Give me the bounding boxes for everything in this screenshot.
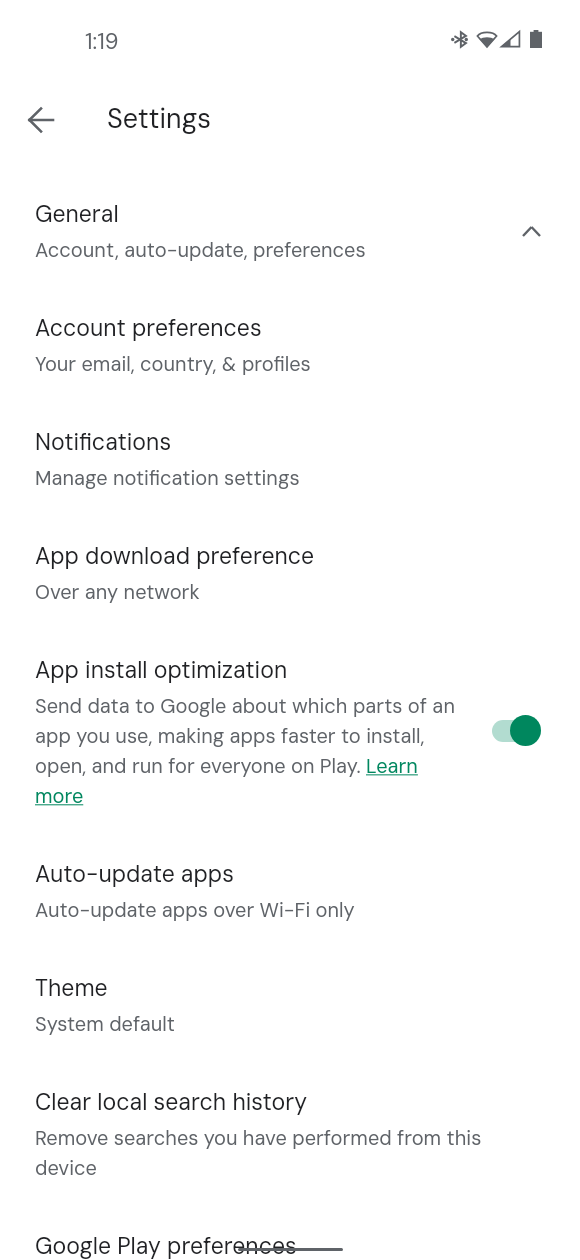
button[interactable]: Notifications [0,427,580,541]
button[interactable]: Clear local search history [0,1087,580,1231]
staticText: App download preference [35,541,315,571]
button[interactable]: Collapse General [507,207,555,255]
staticText: Notifications [35,427,172,457]
staticText: Settings [107,101,211,136]
button[interactable]: Theme [0,973,580,1087]
staticText: System default [35,1011,175,1037]
button[interactable]: App install optimization toggle [492,715,540,746]
button[interactable]: General [0,199,580,313]
staticText: Over any network [35,579,200,605]
button[interactable]: Google Play preferences [0,1231,580,1260]
staticText: Manage notification settings [35,465,300,491]
staticText: Send data to Google about which parts of… [35,693,460,809]
button[interactable]: Account preferences [0,313,580,427]
staticText: General [35,199,119,229]
staticText: Google Play preferences [35,1231,297,1260]
staticText: Account, auto-update, preferences [35,237,366,263]
staticText: Your email, country, & profiles [35,351,311,377]
staticText: Remove searches you have performed from … [35,1125,495,1181]
staticText: Theme [35,973,108,1003]
button[interactable]: App download preference [0,541,580,655]
staticText: Auto-update apps over Wi-Fi only [35,897,355,923]
button[interactable]: Auto-update apps [0,859,580,973]
button[interactable]: Back [8,87,74,153]
staticText: Clear local search history [35,1087,308,1117]
staticText: Account preferences [35,313,262,343]
staticText: 1:19 [85,27,119,56]
button[interactable]: App install optimization [0,655,580,859]
staticText: App install optimization [35,655,288,685]
staticText: Auto-update apps [35,859,234,889]
